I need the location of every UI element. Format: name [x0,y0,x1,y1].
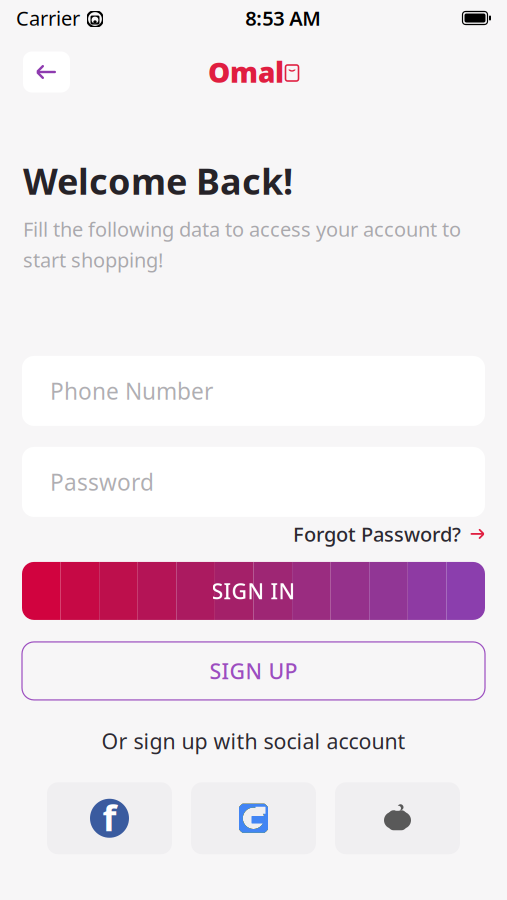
staticText: Omal [208,53,284,91]
staticText: Phone Number [50,376,213,406]
button[interactable]: SIGN UP [0,642,507,700]
button[interactable]: SIGN IN [0,562,507,620]
staticText: Carrier [16,5,80,31]
staticText: Or sign up with social account [101,727,405,755]
button[interactable]: Sign up with Google [191,782,316,854]
button[interactable]: Back [23,51,70,92]
staticText: SIGN UP [209,657,297,685]
staticText: Fill the following data to access your a… [23,216,461,273]
button[interactable]: Sign up with Facebook [47,782,172,854]
staticText: 8:53 AM [245,5,321,31]
button[interactable]: Forgot Password? [0,517,507,551]
staticText: Password [50,467,154,497]
button[interactable]: Sign up with Apple [335,782,460,854]
staticText: SIGN IN [211,577,295,605]
staticText: Forgot Password? [293,521,461,547]
staticText: Welcome Back! [23,157,293,205]
staticText: f [102,793,116,841]
